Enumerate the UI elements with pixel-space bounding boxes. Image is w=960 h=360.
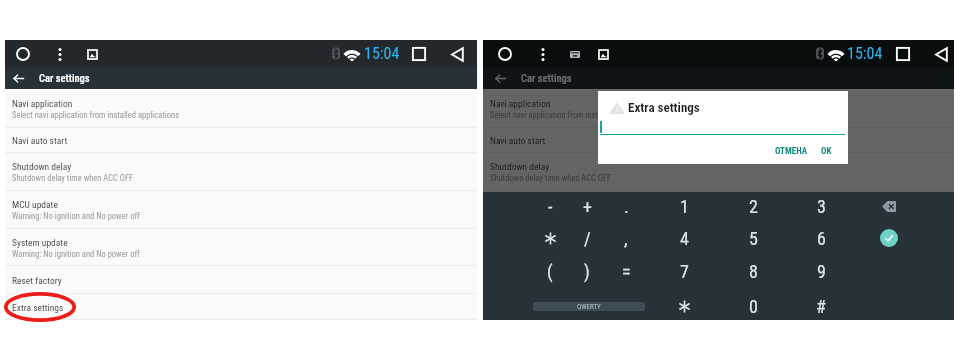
staticText: = (622, 261, 631, 282)
staticText: 1 (680, 196, 689, 217)
button[interactable]: Navi auto start (5, 128, 477, 153)
staticText: 2 (749, 196, 758, 217)
button[interactable]: Home (495, 44, 515, 64)
button[interactable]: Extra settings (483, 294, 954, 320)
staticText: QWERTY (577, 303, 601, 311)
staticText: / (584, 228, 591, 249)
button[interactable]: Navigate up (8, 68, 28, 88)
staticText: Shutdown delay time when ACC OFF (12, 173, 134, 183)
button[interactable]: Screenshot (83, 45, 101, 63)
staticText: Extra settings (628, 100, 700, 115)
staticText: Warning: No ignition and No power off (12, 211, 140, 221)
button[interactable]: ) (570, 255, 604, 287)
button[interactable]: # (804, 290, 838, 322)
other: Enter (880, 229, 898, 247)
button[interactable]: Back (932, 45, 950, 63)
button[interactable]: QWERTY (531, 290, 647, 322)
staticText: Navi auto start (12, 135, 68, 146)
staticText: Warning: No ignition and No power off (490, 211, 618, 221)
staticText: ) (584, 261, 590, 282)
button[interactable]: 5 (736, 222, 770, 254)
button[interactable]: Reset factory (5, 266, 477, 294)
staticText: , (624, 228, 628, 249)
button[interactable]: More options (51, 45, 69, 63)
staticText: Navi application (490, 98, 551, 109)
button[interactable]: ( (533, 255, 567, 287)
staticText: 3 (817, 196, 826, 217)
staticText: Extra settings (12, 302, 64, 313)
staticText: . (624, 196, 629, 217)
button[interactable]: OK (816, 143, 836, 159)
staticText: 7 (680, 261, 689, 282)
staticText: ( (547, 261, 553, 282)
button[interactable]: Shutdown delay (5, 153, 477, 191)
staticText: System update (490, 237, 546, 248)
button[interactable]: 3 (804, 190, 838, 222)
button[interactable]: Back (448, 45, 466, 63)
staticText: Warning: No ignition and No power off (12, 249, 140, 259)
button[interactable]: Shutdown delay (483, 153, 954, 191)
button[interactable]: / (570, 222, 604, 254)
staticText: Select navi application from installed a… (490, 110, 658, 120)
button[interactable]: Navi application (483, 89, 954, 128)
button[interactable]: Recent apps (894, 45, 912, 63)
button[interactable]: 2 (736, 190, 770, 222)
staticText: Navi auto start (490, 135, 546, 146)
staticText: # (816, 296, 826, 317)
staticText: System update (12, 237, 68, 248)
button[interactable]: Backspace (872, 190, 906, 222)
button[interactable]: Enter (872, 222, 906, 254)
staticText: Car settings (39, 72, 90, 84)
button[interactable]: Recent apps (410, 45, 428, 63)
button[interactable]: Navi auto start (483, 128, 954, 153)
button[interactable]: System update (483, 229, 954, 266)
staticText: Navi application (12, 98, 73, 109)
button[interactable]: System update (5, 229, 477, 266)
staticText: Shutdown delay time when ACC OFF (490, 173, 612, 183)
button[interactable]: MCU update (5, 191, 477, 229)
button[interactable]: . (609, 190, 643, 222)
button[interactable]: 0 (736, 290, 770, 322)
button[interactable]: Home (13, 44, 33, 64)
staticText: MCU update (12, 199, 58, 210)
button[interactable]: MCU update (483, 191, 954, 229)
button[interactable]: 9 (804, 255, 838, 287)
button[interactable]: Navigate up (490, 68, 510, 88)
button[interactable]: Reset factory (483, 266, 954, 294)
button[interactable]: 8 (736, 255, 770, 287)
staticText: 15:04 (364, 44, 400, 63)
staticText: Select navi application from installed a… (12, 110, 180, 120)
button[interactable]: 1 (667, 190, 701, 222)
staticText: 6 (817, 228, 826, 249)
button[interactable]: Extra settings (5, 294, 477, 320)
button[interactable]: = (609, 255, 643, 287)
staticText: - (548, 196, 553, 217)
button[interactable]: Navi application (5, 89, 477, 128)
staticText: Car settings (521, 72, 572, 84)
staticText: Shutdown delay (12, 161, 72, 172)
button[interactable]: + (570, 190, 604, 222)
other: Backspace (882, 201, 897, 212)
button[interactable]: ОТМЕНА (770, 143, 812, 159)
staticText: 9 (817, 261, 826, 282)
staticText: Shutdown delay (490, 161, 550, 172)
button[interactable]: More options (534, 45, 552, 63)
button[interactable]: Screenshot (594, 45, 612, 63)
staticText: 5 (749, 228, 758, 249)
staticText: Reset factory (12, 275, 62, 286)
button[interactable]: Keyboard (566, 45, 584, 63)
button[interactable]: - (533, 190, 567, 222)
button[interactable]: , (609, 222, 643, 254)
button[interactable]: 7 (667, 255, 701, 287)
button[interactable]: 4 (667, 222, 701, 254)
staticText: Extra settings (490, 302, 542, 313)
staticText: OK (821, 146, 832, 157)
button[interactable]: 6 (804, 222, 838, 254)
button[interactable] (533, 222, 567, 254)
staticText: 15:04 (847, 44, 883, 63)
staticText: 4 (680, 228, 689, 249)
button[interactable] (667, 290, 701, 322)
